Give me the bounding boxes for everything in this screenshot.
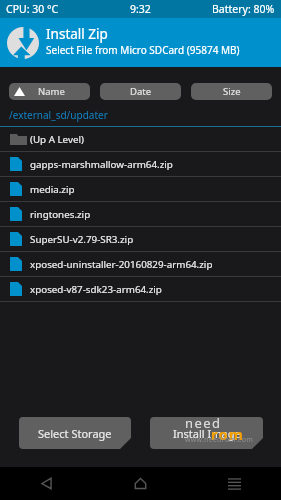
staticText: /external_sd/updater	[9, 108, 108, 122]
button[interactable]: media.zip	[0, 177, 281, 202]
staticText: ringtones.zip	[30, 208, 91, 221]
button[interactable]: Back	[0, 467, 93, 500]
button[interactable]: Recents	[187, 467, 281, 500]
button[interactable]: gapps-marshmallow-arm64.zip	[0, 152, 281, 177]
button[interactable]: (Up A Level)	[0, 127, 281, 152]
staticText: Date	[130, 85, 152, 98]
staticText: xposed-v87-sdk23-arm64.zip	[30, 283, 162, 296]
button[interactable]: Size	[191, 83, 272, 100]
button[interactable]: ringtones.zip	[0, 202, 281, 227]
staticText: Select File from Micro SDCard (95874 MB)	[46, 43, 240, 57]
button[interactable]: Home	[93, 467, 187, 500]
button[interactable]: Select Storage	[19, 417, 131, 449]
staticText: Install Zip	[46, 25, 108, 43]
staticText: www.needrom.com	[185, 435, 253, 445]
button[interactable]: Name	[9, 83, 90, 100]
staticText: Select Storage	[38, 426, 112, 441]
staticText: (Up A Level)	[30, 133, 84, 146]
button[interactable]: SuperSU-v2.79-SR3.zip	[0, 227, 281, 252]
staticText: gapps-marshmallow-arm64.zip	[30, 158, 173, 171]
staticText: xposed-uninstaller-20160829-arm64.zip	[30, 258, 213, 271]
button[interactable]: Date	[100, 83, 181, 100]
staticText: CPU: 30 °C	[6, 2, 59, 16]
staticText: Install Image	[173, 426, 241, 441]
staticText: need	[185, 414, 222, 432]
staticText: rom	[211, 424, 244, 444]
staticText: Name	[38, 85, 65, 98]
staticText: SuperSU-v2.79-SR3.zip	[30, 233, 134, 246]
staticText: Battery: 80%	[212, 2, 275, 16]
button[interactable]: xposed-uninstaller-20160829-arm64.zip	[0, 252, 281, 277]
staticText: media.zip	[30, 183, 75, 196]
button[interactable]: Install Image	[150, 417, 263, 449]
button[interactable]: xposed-v87-sdk23-arm64.zip	[0, 277, 281, 302]
staticText: 9:32	[130, 2, 151, 16]
staticText: Size	[223, 85, 241, 98]
